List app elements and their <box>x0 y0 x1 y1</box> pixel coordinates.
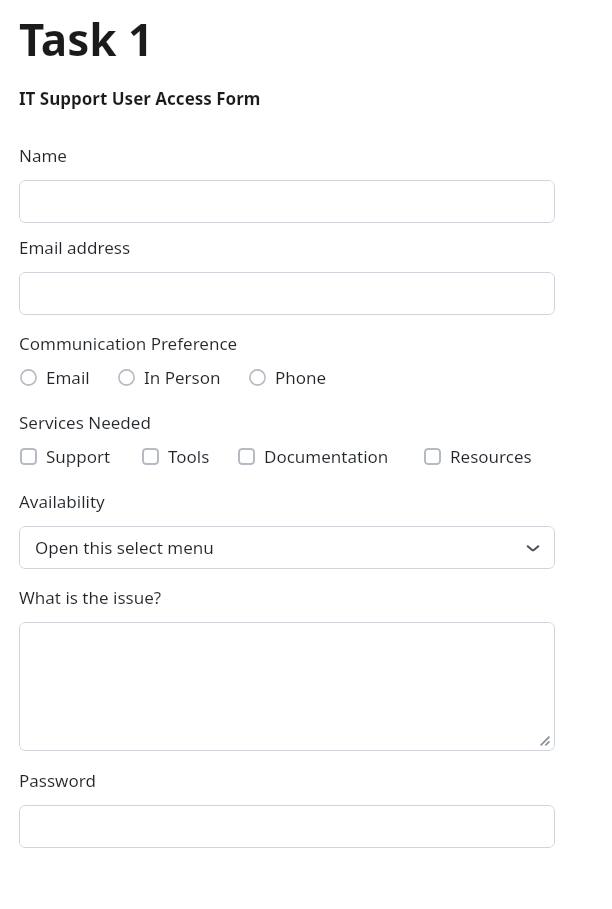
staticText: Open this select menu <box>35 536 214 559</box>
staticText: Services Needed <box>19 411 151 434</box>
staticText: Email address <box>19 236 131 259</box>
button[interactable]: Support <box>20 445 111 467</box>
button[interactable] <box>19 180 555 223</box>
staticText: Password <box>19 769 96 792</box>
button[interactable]: Resources <box>424 445 532 467</box>
button[interactable] <box>19 622 555 751</box>
staticText: In Person <box>144 366 221 388</box>
staticText: IT Support User Access Form <box>19 87 261 110</box>
button[interactable]: Phone <box>249 366 327 388</box>
button[interactable]: Open this select menu <box>19 526 555 569</box>
staticText: What is the issue? <box>19 586 162 609</box>
staticText: Task 1 <box>19 9 154 69</box>
button[interactable] <box>19 805 555 848</box>
staticText: Name <box>19 144 67 167</box>
button[interactable]: Documentation <box>238 445 389 467</box>
staticText: Email <box>46 366 90 388</box>
button[interactable] <box>19 272 555 315</box>
button[interactable]: Email <box>20 366 90 388</box>
staticText: Tools <box>168 445 210 467</box>
staticText: Documentation <box>264 445 389 467</box>
staticText: Support <box>46 445 111 467</box>
button[interactable]: In Person <box>118 366 221 388</box>
other: Open select menu <box>526 541 540 555</box>
button[interactable]: Tools <box>142 445 210 467</box>
staticText: Communication Preference <box>19 332 238 355</box>
staticText: Resources <box>450 445 532 467</box>
staticText: Phone <box>275 366 327 388</box>
staticText: Availability <box>19 490 105 513</box>
